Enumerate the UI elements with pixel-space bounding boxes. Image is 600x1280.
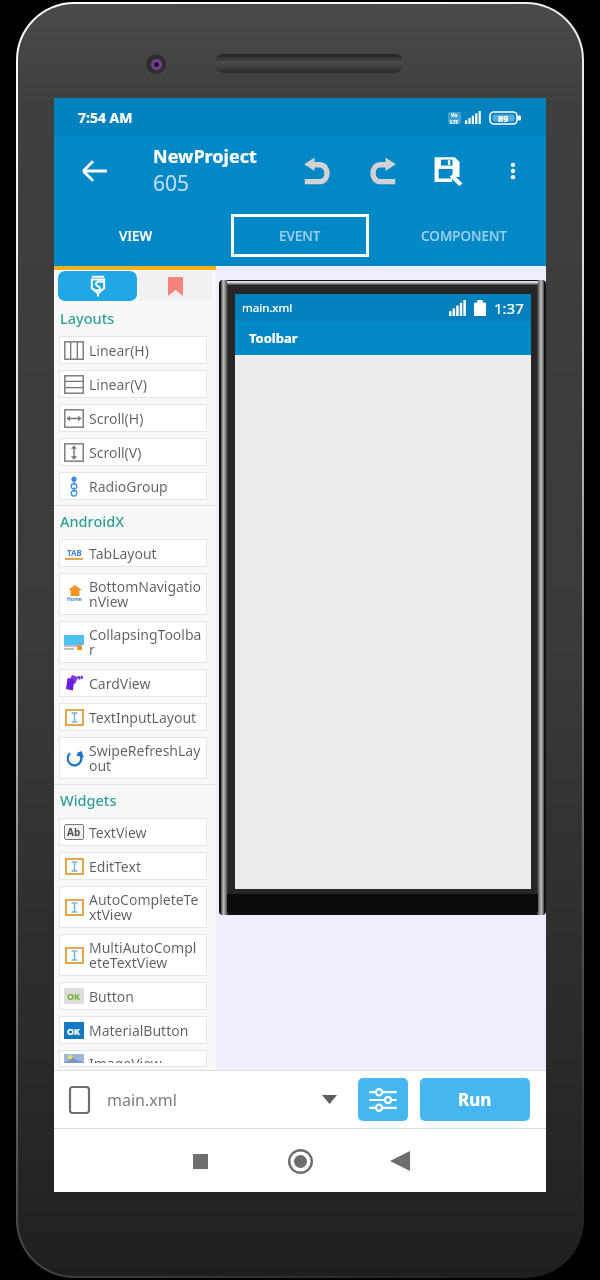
staticText: Linear(V) [89, 375, 202, 394]
staticText: OK [67, 1025, 81, 1037]
button[interactable]: Recent apps [150, 1136, 250, 1186]
button[interactable]: VIEW [67, 214, 205, 257]
staticText: main.xml [107, 1089, 177, 1111]
button[interactable]: TAB [59, 539, 207, 567]
staticText: VIEW [119, 227, 153, 245]
staticText: Home [67, 596, 82, 603]
staticText: Button [89, 987, 202, 1006]
staticText: Widgets [60, 790, 117, 810]
button[interactable]: main.xml [54, 1071, 358, 1128]
button[interactable]: MultiAutoCompleteTextView [59, 934, 207, 976]
button[interactable]: Save [417, 141, 480, 201]
button[interactable]: Ab [59, 818, 207, 846]
staticText: AndroidX [60, 511, 125, 531]
staticText: MultiAutoCompleteTextView [89, 938, 202, 972]
staticText: CollapsingToolbar [89, 625, 202, 659]
staticText: LTE [450, 119, 459, 124]
button[interactable]: OK [59, 1016, 207, 1044]
staticText: Ab [67, 825, 81, 839]
button[interactable]: Run [420, 1078, 530, 1121]
button[interactable]: Home [250, 1136, 350, 1186]
button[interactable]: Linear(V) [59, 370, 207, 398]
staticText: EVENT [279, 227, 321, 245]
button[interactable]: Back [54, 141, 135, 201]
button[interactable]: COMPONENT [395, 214, 533, 257]
staticText: TabLayout [89, 544, 202, 563]
staticText: CardView [89, 674, 202, 693]
button[interactable]: ImageView [59, 1050, 207, 1067]
button[interactable]: Redo [350, 141, 417, 201]
staticText: Layouts [60, 308, 115, 328]
staticText: 7:54 AM [78, 108, 133, 127]
staticText: MaterialButton [89, 1021, 202, 1040]
staticText: Toolbar [249, 329, 298, 347]
staticText: SwipeRefreshLayout [89, 741, 202, 775]
staticText: Vo [451, 112, 458, 119]
button[interactable]: Scroll(V) [59, 438, 207, 466]
staticText: BottomNavigationView [89, 577, 202, 611]
button[interactable]: SwipeRefreshLayout [59, 737, 207, 779]
staticText: Scroll(H) [89, 409, 202, 428]
staticText: NewProject [153, 144, 257, 169]
staticText: TAB [67, 547, 82, 558]
button[interactable]: Favorites [139, 271, 212, 301]
staticText: 1:37 [494, 298, 524, 318]
staticText: OK [67, 990, 81, 1002]
button[interactable]: Undo [283, 141, 350, 201]
staticText: RadioGroup [89, 477, 202, 496]
button[interactable]: Back [350, 1136, 450, 1186]
staticText: COMPONENT [421, 227, 508, 245]
staticText: Linear(H) [89, 341, 202, 360]
button[interactable]: EVENT [231, 214, 369, 257]
staticText: 605 [153, 169, 190, 198]
staticText: EditText [89, 857, 202, 876]
staticText: 89 [498, 112, 509, 124]
button[interactable]: RadioGroup [59, 472, 207, 500]
staticText: ImageView [89, 1054, 202, 1063]
staticText: TextView [89, 823, 202, 842]
button[interactable]: Linear(H) [59, 336, 207, 364]
button[interactable]: OK [59, 982, 207, 1010]
staticText: TextInputLayout [89, 708, 202, 727]
staticText: AutoCompleteTextView [89, 890, 202, 924]
staticText: Scroll(V) [89, 443, 202, 462]
button[interactable]: More options [480, 141, 546, 201]
button[interactable]: AutoCompleteTextView [59, 886, 207, 928]
button[interactable]: EditText [59, 852, 207, 880]
button[interactable]: Scroll(H) [59, 404, 207, 432]
button[interactable]: Settings [358, 1078, 408, 1121]
button[interactable]: TextInputLayout [59, 703, 207, 731]
button[interactable]: CollapsingToolbar [59, 621, 207, 663]
staticText: main.xml [242, 300, 293, 316]
button[interactable]: Widgets palette [58, 271, 137, 301]
button[interactable]: CardView [59, 669, 207, 697]
button[interactable]: Home [59, 573, 207, 615]
staticText: Run [458, 1088, 492, 1111]
